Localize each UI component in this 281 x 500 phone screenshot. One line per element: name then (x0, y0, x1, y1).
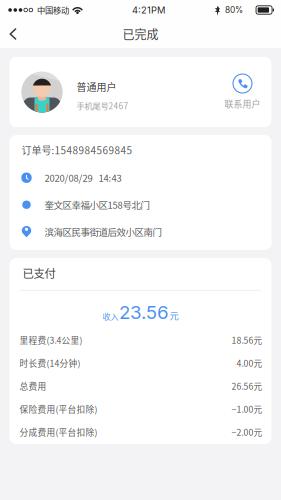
staticText: 保险费用(平台扣除) (19, 403, 97, 415)
staticText: 普通用户 (76, 79, 116, 94)
staticText: 总费用 (19, 380, 46, 392)
button[interactable]: 联系用户 (224, 74, 260, 110)
staticText: 元 (169, 308, 178, 322)
staticText: −1.00元 (231, 403, 262, 415)
staticText: 中国移动 (37, 4, 69, 16)
staticText: 里程费(3.4公里) (19, 334, 82, 346)
staticText: 订单号:1548984569845 (21, 143, 132, 157)
staticText: 手机尾号2467 (76, 100, 128, 112)
staticText: 收入 (102, 310, 118, 322)
button[interactable]: Back (0, 21, 29, 47)
staticText: 已支付 (22, 264, 55, 281)
staticText: 滨海区民事街道后效小区南门 (44, 225, 161, 239)
staticText: 时长费(14分钟) (19, 357, 80, 369)
staticText: 2020/08/29 14:43 (44, 171, 121, 185)
staticText: 18.56元 (231, 334, 262, 346)
staticText: 奎文区幸福小区158号北门 (44, 198, 149, 212)
staticText: 已完成 (122, 25, 158, 43)
staticText: 80% (225, 5, 243, 15)
staticText: 26.56元 (231, 380, 262, 392)
staticText: 分成费用(平台扣除) (19, 426, 97, 438)
staticText: 4.00元 (236, 357, 262, 369)
staticText: 4:21PM (132, 4, 165, 16)
staticText: 23.56 (119, 301, 169, 323)
staticText: 联系用户 (224, 97, 260, 110)
staticText: −2.00元 (231, 426, 262, 438)
